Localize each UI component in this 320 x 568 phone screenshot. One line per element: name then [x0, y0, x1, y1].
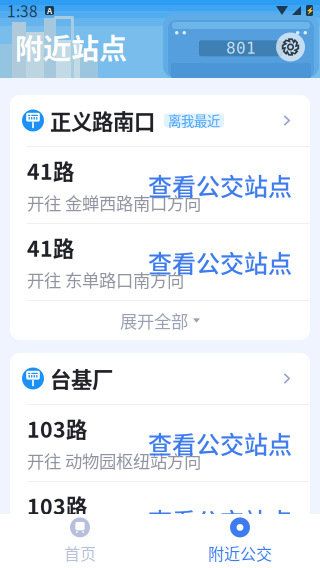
- staticText: 附近公交: [208, 541, 272, 565]
- staticText: 正义路南口: [50, 105, 155, 136]
- staticText: 开往 动物园枢纽站方向: [27, 448, 201, 473]
- button[interactable]: 41路: [10, 224, 310, 300]
- staticText: 开往 东单路口南方向: [27, 267, 184, 292]
- button[interactable]: 附近公交: [160, 514, 320, 568]
- staticText: 离我最近: [168, 111, 220, 130]
- staticText: 1:38: [7, 0, 38, 22]
- staticText: 查看公交站点: [148, 426, 292, 460]
- staticText: A: [47, 5, 52, 16]
- staticText: 103路: [27, 413, 87, 444]
- button[interactable]: 台基厂: [10, 353, 310, 404]
- staticText: 展开全部: [120, 308, 188, 333]
- staticText: 801: [226, 39, 256, 58]
- staticText: 查看公交站点: [148, 245, 292, 279]
- button[interactable]: 41路: [10, 147, 310, 223]
- staticText: 查看公交站点: [148, 168, 292, 202]
- staticText: ⚡: [305, 7, 313, 14]
- button[interactable]: 设置: [276, 32, 305, 61]
- staticText: 查看公交站点: [148, 503, 292, 537]
- staticText: 附近站点: [15, 27, 127, 67]
- staticText: 41路: [27, 155, 74, 186]
- button[interactable]: 103路: [10, 482, 310, 558]
- staticText: 开往 金蝉西路南口方向: [27, 190, 201, 215]
- staticText: 首页: [64, 541, 96, 565]
- staticText: 开往 左家庄方向: [27, 525, 150, 550]
- button[interactable]: 103路: [10, 405, 310, 481]
- staticText: 41路: [27, 232, 74, 263]
- button[interactable]: 正义路南口: [10, 95, 310, 146]
- button[interactable]: 展开全部: [10, 301, 310, 340]
- button[interactable]: 首页: [0, 514, 160, 568]
- staticText: 台基厂: [50, 363, 113, 394]
- staticText: 103路: [27, 490, 87, 521]
